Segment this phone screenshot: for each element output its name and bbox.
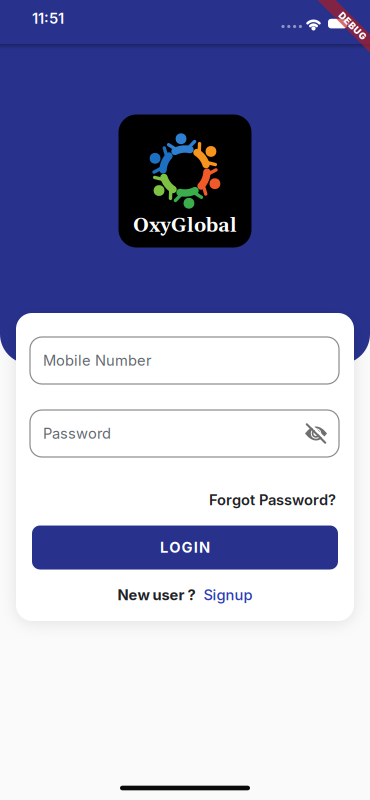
button[interactable]: Mobile Number [30, 337, 339, 384]
staticText: OxyGlobal [133, 214, 237, 238]
button[interactable]: LOGIN [32, 525, 338, 569]
staticText: New user ? [117, 586, 195, 604]
staticText: LOGIN [160, 539, 210, 556]
staticText: Mobile Number [43, 352, 152, 369]
staticText: 11:51 [32, 10, 64, 27]
staticText: DEBUG [335, 20, 370, 31]
button[interactable]: Signup [203, 586, 252, 604]
staticText: Forgot Password? [209, 491, 336, 509]
button[interactable]: Password [30, 410, 339, 457]
button[interactable]: Forgot Password? [209, 491, 336, 509]
staticText: Signup [203, 586, 252, 604]
staticText: Password [43, 425, 111, 442]
